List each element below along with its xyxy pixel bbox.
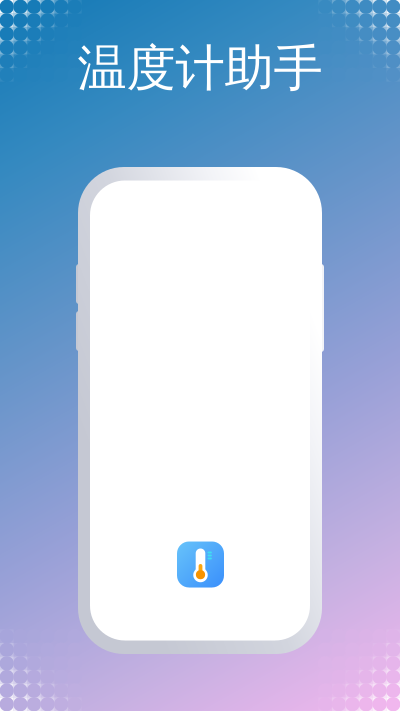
- staticText: 温度计助手: [77, 38, 322, 99]
